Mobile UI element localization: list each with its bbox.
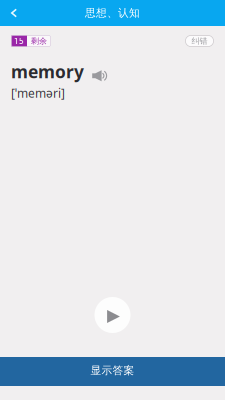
staticText: [ˈmeməri] xyxy=(11,85,65,101)
staticText: 显示答案 xyxy=(90,364,134,377)
button[interactable]: Pronounce xyxy=(92,70,108,83)
button[interactable]: Play xyxy=(94,297,130,333)
staticText: 思想、认知 xyxy=(85,6,140,19)
button[interactable]: 纠错 xyxy=(185,35,214,47)
button[interactable]: Back xyxy=(0,0,28,26)
button[interactable]: 显示答案 xyxy=(0,357,225,386)
staticText: 纠错 xyxy=(191,36,207,46)
staticText: 15 xyxy=(14,36,24,46)
staticText: 剩余 xyxy=(31,36,47,46)
staticText: memory xyxy=(11,60,84,83)
